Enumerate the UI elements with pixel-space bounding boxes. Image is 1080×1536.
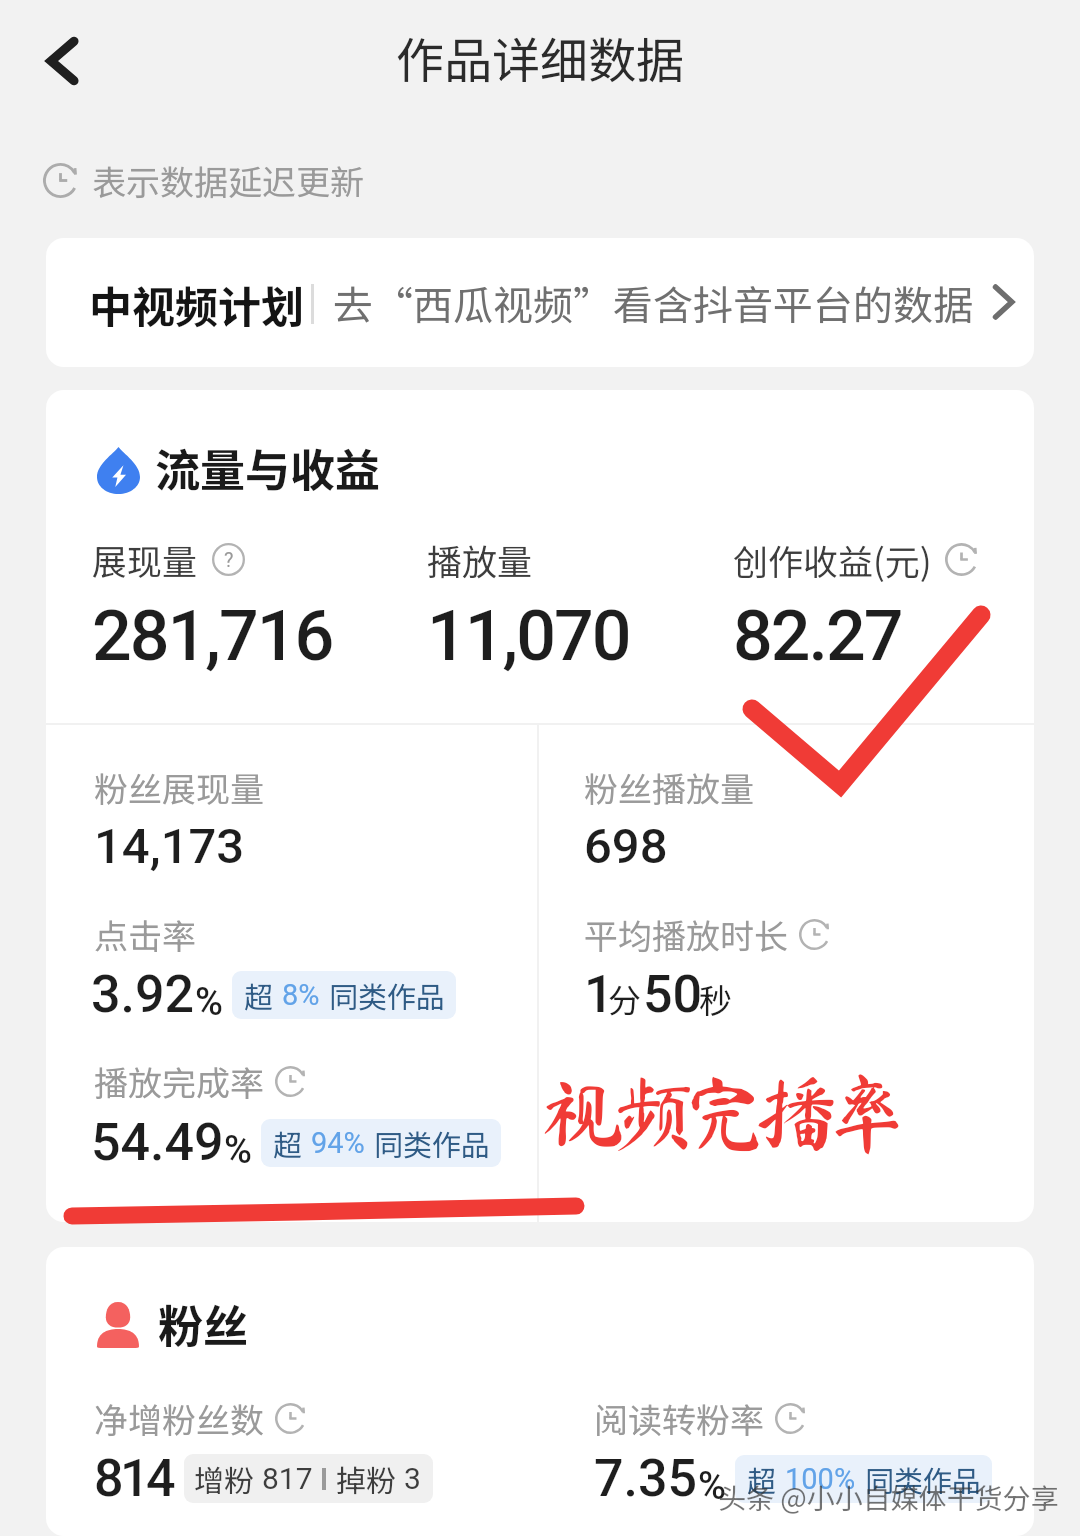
staticText: 粉丝展现量 bbox=[94, 763, 264, 812]
staticText: 中视频计划 bbox=[89, 273, 304, 335]
staticText: 展现量 bbox=[92, 534, 198, 585]
staticText: 点击率 bbox=[94, 910, 196, 959]
staticText: 表示数据延迟更新 bbox=[92, 156, 364, 205]
staticText: 3.92 bbox=[91, 964, 195, 1025]
staticText: 平均播放时长 bbox=[584, 910, 788, 959]
staticText: 去“西瓜视频”看含抖音平台的数据 bbox=[333, 274, 973, 332]
staticText: 8% bbox=[282, 978, 320, 1012]
staticText: 3 bbox=[404, 1461, 421, 1496]
staticText: % bbox=[224, 1128, 252, 1173]
staticText: 817 bbox=[262, 1461, 313, 1496]
staticText: 流量与收益 bbox=[155, 435, 381, 500]
staticText: ? bbox=[224, 548, 234, 571]
staticText: 视频完播率 bbox=[541, 1070, 897, 1154]
staticText: 同类作品 bbox=[374, 1122, 491, 1164]
staticText: 阅读转粉率 bbox=[594, 1394, 764, 1443]
staticText: 54.49 bbox=[91, 1112, 224, 1173]
staticText: 超 bbox=[244, 974, 274, 1016]
staticText: 作品详细数据 bbox=[396, 22, 685, 92]
staticText: 秒 bbox=[699, 975, 732, 1023]
staticText: 净增粉丝数 bbox=[94, 1394, 264, 1443]
button[interactable]: 中视频计划 bbox=[46, 238, 1034, 367]
staticText: 281,716 bbox=[92, 595, 333, 677]
staticText: 粉丝 bbox=[158, 1291, 249, 1356]
staticText: 814 bbox=[94, 1448, 173, 1509]
staticText: % bbox=[698, 1464, 726, 1509]
staticText: 头条 @小小自媒体干货分享 bbox=[718, 1477, 1059, 1518]
staticText: 100% bbox=[785, 1462, 856, 1496]
staticText: 7.35 bbox=[594, 1448, 698, 1509]
staticText: 1 bbox=[584, 964, 614, 1025]
staticText: 超 bbox=[273, 1122, 303, 1164]
staticText: 698 bbox=[584, 818, 668, 875]
staticText: % bbox=[195, 980, 223, 1025]
staticText: 增粉 bbox=[194, 1457, 254, 1500]
staticText: 82.27 bbox=[733, 595, 902, 677]
staticText: 11,070 bbox=[427, 595, 630, 677]
staticText: 粉丝播放量 bbox=[584, 763, 754, 812]
staticText: 同类作品 bbox=[329, 974, 446, 1016]
button[interactable]: Back bbox=[30, 28, 96, 94]
staticText: 50 bbox=[643, 964, 703, 1025]
staticText: 分 bbox=[608, 975, 641, 1023]
staticText: 创作收益(元) bbox=[733, 534, 932, 585]
staticText: 94% bbox=[311, 1126, 365, 1160]
staticText: 超 bbox=[747, 1458, 777, 1500]
staticText: 播放完成率 bbox=[94, 1057, 264, 1106]
staticText: 同类作品 bbox=[865, 1458, 982, 1500]
staticText: 播放量 bbox=[427, 534, 533, 585]
staticText: 14,173 bbox=[94, 818, 245, 875]
staticText: 掉粉 bbox=[336, 1457, 396, 1500]
